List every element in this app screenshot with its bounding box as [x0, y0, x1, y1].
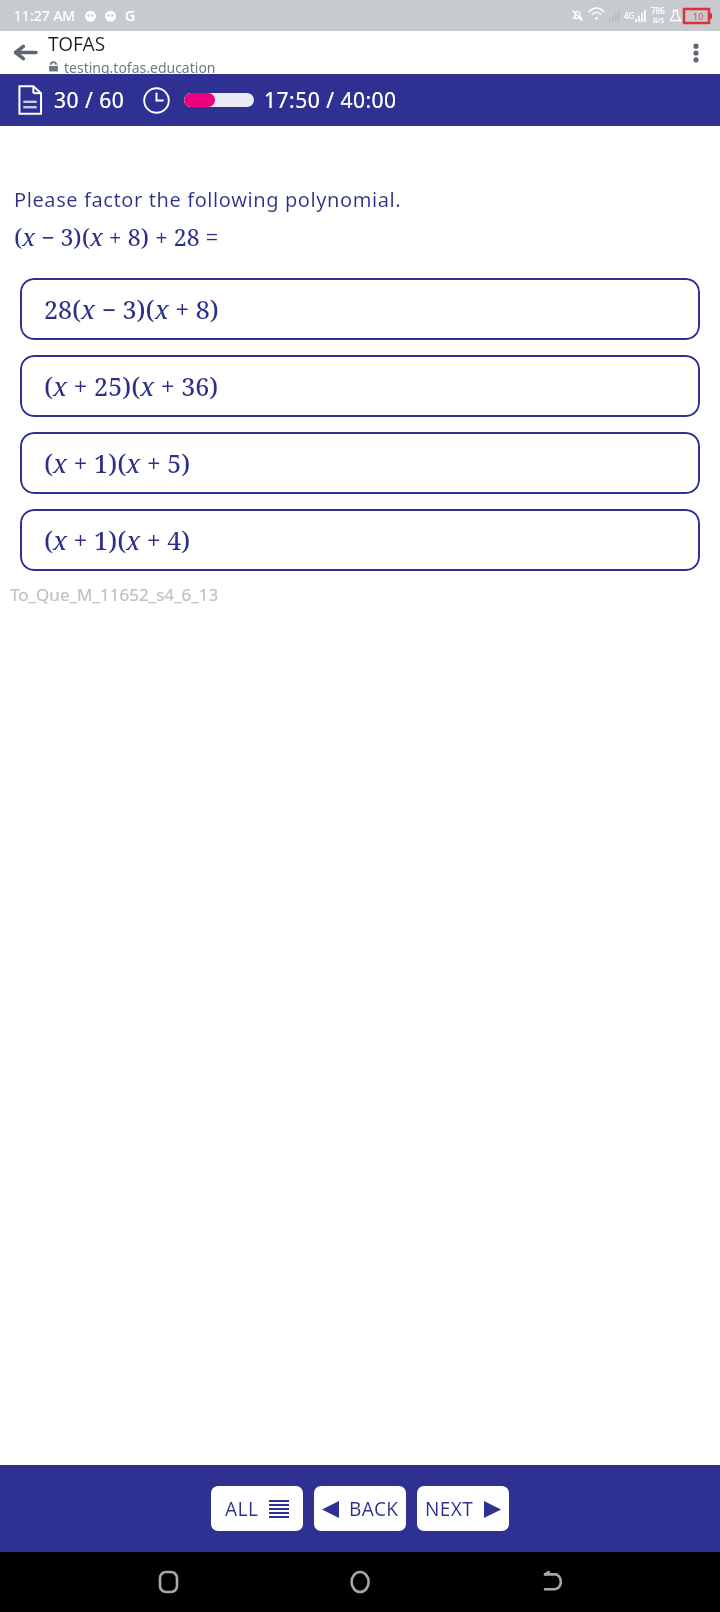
button[interactable]: Back: [528, 1558, 576, 1606]
staticText: 30 / 60: [54, 86, 125, 115]
staticText: 10: [693, 10, 704, 22]
button[interactable]: ALL: [211, 1486, 303, 1531]
staticText: (x + 1)(x + 4): [44, 523, 191, 557]
staticText: TOFAS: [48, 31, 106, 57]
button[interactable]: (x + 1)(x + 5): [20, 432, 700, 494]
button[interactable]: (x + 25)(x + 36): [20, 355, 700, 417]
staticText: B/S: [653, 16, 664, 26]
staticText: BACK: [349, 1496, 399, 1522]
button[interactable]: NEXT: [417, 1486, 509, 1531]
staticText: To_Que_M_11652_s4_6_13: [10, 583, 219, 606]
staticText: testing.tofas.education: [64, 58, 216, 74]
staticText: 11:27 AM: [14, 6, 76, 25]
staticText: G: [125, 6, 136, 25]
button[interactable]: Recents: [144, 1558, 192, 1606]
staticText: ALL: [225, 1496, 259, 1522]
staticText: (x + 1)(x + 5): [44, 446, 191, 480]
staticText: 28(x − 3)(x + 8): [44, 292, 219, 326]
staticText: 17:50 / 40:00: [264, 86, 397, 115]
button[interactable]: Back: [0, 31, 48, 74]
staticText: (x + 25)(x + 36): [44, 369, 219, 403]
button[interactable]: BACK: [314, 1486, 406, 1531]
button[interactable]: Home: [336, 1558, 384, 1606]
button[interactable]: More options: [672, 31, 720, 74]
button[interactable]: 28(x − 3)(x + 8): [20, 278, 700, 340]
staticText: 4G: [624, 10, 635, 21]
staticText: Please factor the following polynomial.: [14, 186, 402, 213]
staticText: 786: [651, 5, 665, 16]
staticText: NEXT: [425, 1496, 474, 1522]
button[interactable]: (x + 1)(x + 4): [20, 509, 700, 571]
staticText: (x − 3)(x + 8) + 28 =: [14, 221, 219, 252]
